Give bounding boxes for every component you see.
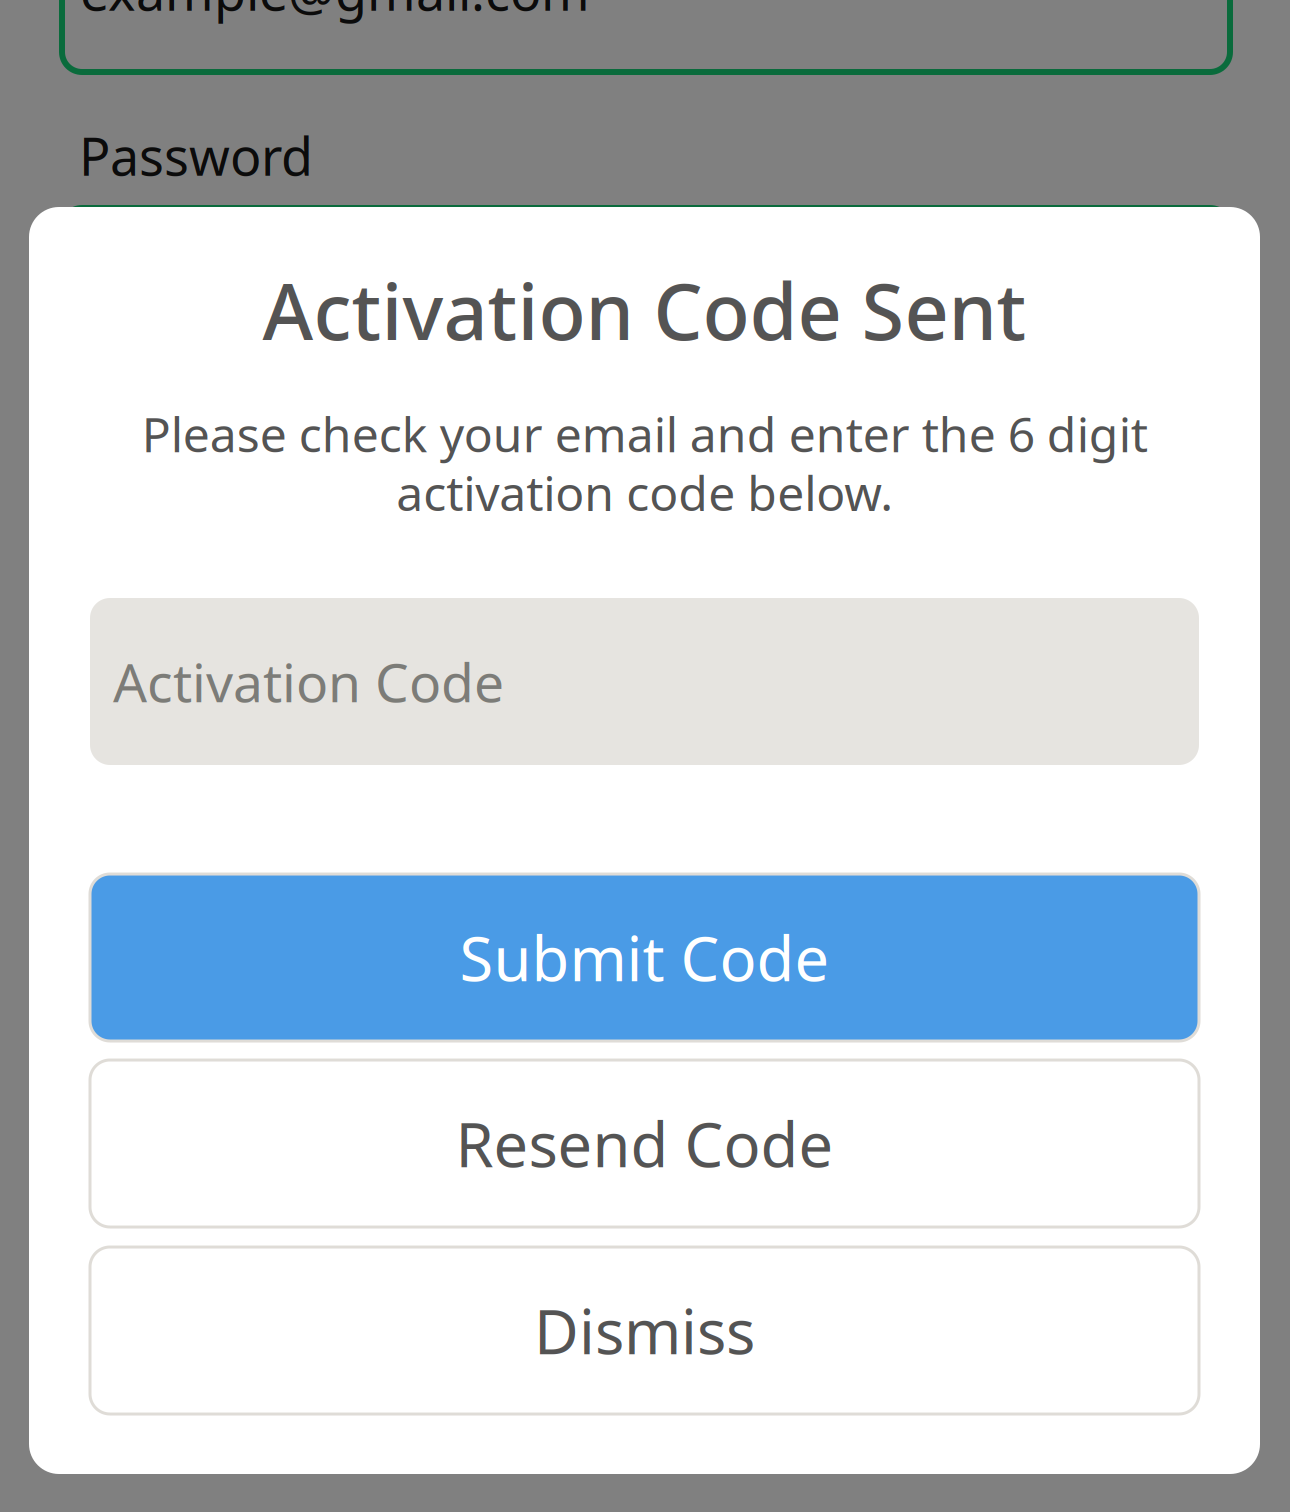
staticText: Please check your email and enter the 6 …	[141, 402, 1147, 524]
button[interactable]: Dismiss	[90, 1247, 1199, 1414]
button[interactable]: Resend Code	[90, 1060, 1199, 1227]
staticText: Activation Code	[113, 646, 504, 717]
button[interactable]: Submit Code	[90, 874, 1199, 1041]
staticText: Submit Code	[459, 917, 829, 998]
staticText: Activation Code Sent	[262, 259, 1026, 361]
staticText: Password	[79, 121, 313, 190]
button[interactable]: Activation Code	[90, 598, 1199, 765]
staticText: example@gmail.com	[80, 0, 590, 25]
staticText: Resend Code	[455, 1103, 833, 1184]
staticText: Dismiss	[534, 1290, 755, 1371]
